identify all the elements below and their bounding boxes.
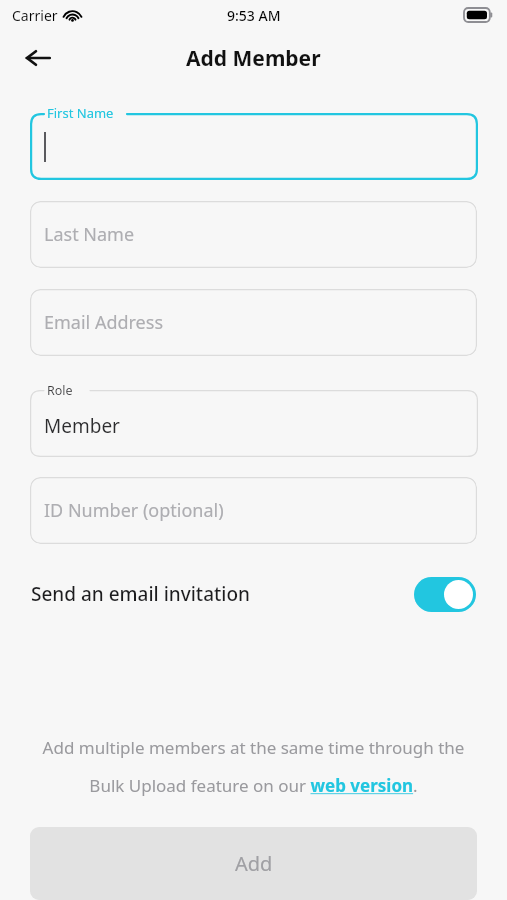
- button[interactable]: ID Number (optional): [30, 477, 477, 544]
- staticText: Email Address: [44, 310, 164, 335]
- staticText: 9:53 AM: [227, 6, 281, 25]
- staticText: Send an email invitation: [31, 581, 250, 607]
- staticText: ID Number (optional): [44, 498, 224, 523]
- staticText: Add Member: [186, 44, 321, 73]
- staticText: Carrier: [12, 6, 58, 25]
- staticText: Last Name: [44, 222, 135, 247]
- button[interactable]: Add: [30, 827, 477, 900]
- button[interactable]: Last Name: [30, 201, 477, 268]
- button[interactable]: Email Address: [30, 289, 477, 356]
- staticText: Role: [47, 382, 73, 399]
- staticText: First Name: [47, 104, 114, 122]
- button[interactable]: Send an email invitation: [31, 568, 476, 620]
- staticText: Add: [235, 850, 273, 877]
- button[interactable]: Role: [0, 377, 507, 457]
- staticText: Add multiple members at the same time th…: [28, 736, 479, 797]
- button[interactable]: Back: [14, 34, 62, 82]
- staticText: Member: [44, 413, 120, 439]
